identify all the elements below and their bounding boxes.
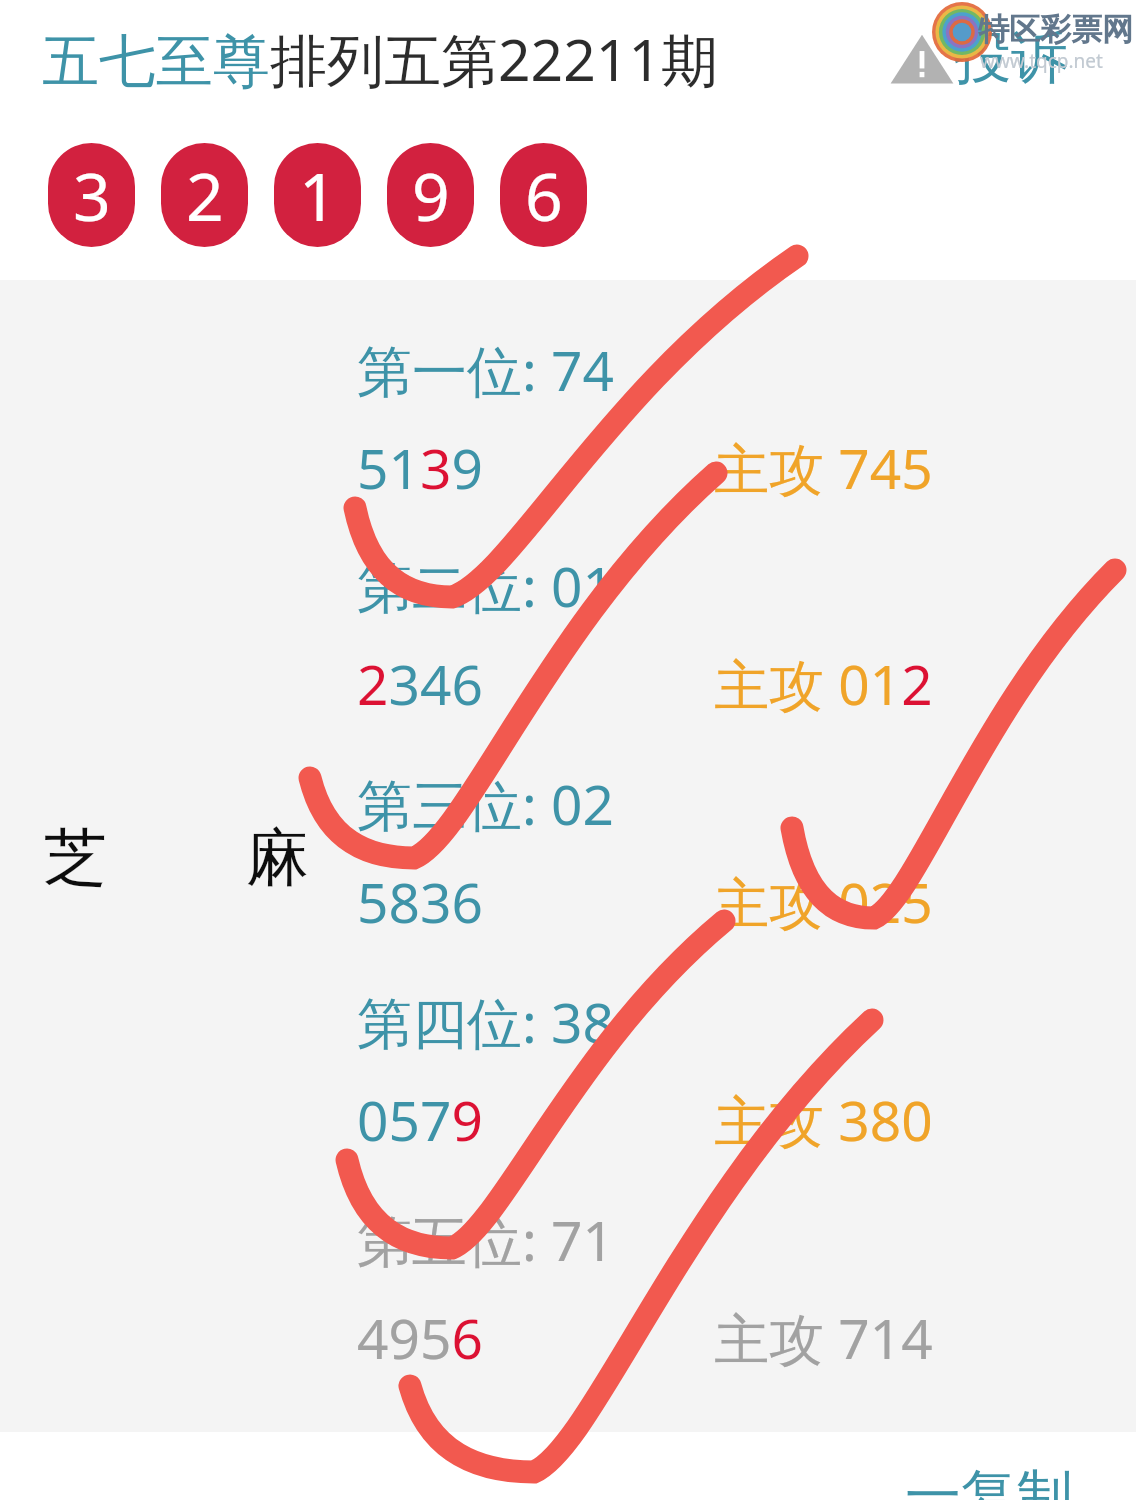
other: 投诉 <box>890 29 954 87</box>
staticText: 3 <box>73 150 111 240</box>
button[interactable]: 6 <box>500 143 587 247</box>
staticText: 芝 <box>44 818 107 897</box>
button[interactable]: 4956 <box>357 1300 483 1375</box>
button[interactable]: 2 <box>161 143 248 247</box>
staticText: 1 <box>299 150 337 240</box>
button[interactable]: 第三位: 02 <box>357 766 614 841</box>
button[interactable]: 5139 <box>357 430 483 505</box>
button[interactable]: 2346 <box>357 646 483 721</box>
staticText: 6 <box>525 150 563 240</box>
staticText: 2 <box>186 150 224 240</box>
button[interactable]: 5836 <box>357 864 483 939</box>
button[interactable]: 第二位: 01 <box>357 548 614 623</box>
button[interactable]: 0579 <box>357 1082 483 1157</box>
staticText: 投诉 <box>954 22 1068 94</box>
staticText: 特区彩票网 <box>978 10 1133 49</box>
button[interactable]: 第一位: 74 <box>357 332 614 407</box>
button[interactable]: 主攻 745 <box>714 430 933 505</box>
staticText: 9 <box>412 150 450 240</box>
staticText: 麻 <box>246 818 309 897</box>
button[interactable]: 主攻 025 <box>714 864 933 939</box>
button[interactable]: 1 <box>274 143 361 247</box>
button[interactable]: 第四位: 38 <box>357 984 614 1059</box>
button[interactable]: 投诉 <box>890 22 1068 94</box>
button[interactable]: 第五位: 71 <box>357 1202 614 1277</box>
staticText: 五七至尊排列五第22211期 <box>42 20 719 98</box>
button[interactable]: 一复制 <box>905 1461 1073 1500</box>
staticText: www.tqcp.net <box>980 48 1103 74</box>
button[interactable]: 9 <box>387 143 474 247</box>
button[interactable]: 主攻 380 <box>714 1082 933 1157</box>
button[interactable]: 五七至尊排列五第22211期 <box>42 20 719 98</box>
button[interactable]: 3 <box>48 143 135 247</box>
button[interactable]: 主攻 714 <box>714 1300 933 1375</box>
button[interactable]: 主攻 012 <box>714 646 933 721</box>
